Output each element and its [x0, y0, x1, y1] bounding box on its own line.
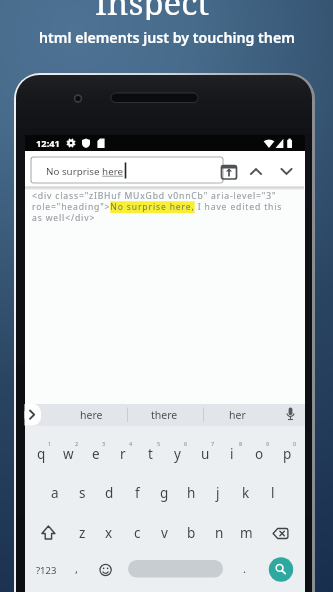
staticText: j: [216, 484, 220, 502]
staticText: k: [242, 484, 250, 502]
button[interactable]: [164, 437, 190, 471]
button[interactable]: [269, 558, 293, 582]
button[interactable]: [110, 437, 136, 471]
staticText: g: [160, 484, 169, 502]
staticText: u: [201, 445, 210, 463]
button[interactable]: [274, 437, 300, 471]
staticText: 12:41: [36, 137, 60, 150]
button[interactable]: [55, 437, 81, 471]
staticText: b: [187, 524, 196, 542]
button[interactable]: [260, 477, 286, 511]
staticText: e: [92, 445, 100, 463]
button[interactable]: [205, 477, 231, 511]
button[interactable]: [233, 477, 259, 511]
staticText: x: [105, 524, 113, 542]
staticText: html elements just by touching them: [39, 28, 295, 47]
button[interactable]: [83, 437, 109, 471]
staticText: i: [230, 445, 234, 463]
staticText: a: [51, 484, 59, 502]
staticText: 4: [129, 440, 133, 447]
staticText: 0: [293, 440, 297, 447]
staticText: n: [215, 524, 224, 542]
button[interactable]: [137, 437, 163, 471]
staticText: y: [174, 445, 181, 463]
staticText: f: [135, 484, 140, 502]
button[interactable]: [69, 477, 95, 511]
staticText: r: [120, 445, 126, 463]
staticText: 7: [211, 440, 215, 447]
button[interactable]: [96, 477, 122, 511]
button[interactable]: [178, 518, 204, 552]
staticText: s: [79, 484, 86, 502]
staticText: 2: [75, 440, 79, 447]
button[interactable]: [96, 518, 122, 552]
staticText: l: [271, 484, 275, 502]
button[interactable]: [28, 437, 54, 471]
button[interactable]: [92, 556, 120, 584]
staticText: here: [80, 408, 103, 422]
staticText: p: [283, 445, 292, 463]
staticText: t: [148, 445, 153, 463]
staticText: <div class="zIBHuf MUxGbd v0nnCb" aria-l…: [32, 190, 277, 202]
button[interactable]: [70, 404, 112, 425]
staticText: as well</div>: [32, 212, 96, 224]
staticText: 9: [266, 440, 270, 447]
staticText: No surprise here: [46, 165, 124, 178]
button[interactable]: [219, 437, 245, 471]
button[interactable]: [216, 404, 258, 425]
button[interactable]: [178, 477, 204, 511]
staticText: 3: [102, 440, 106, 447]
button[interactable]: [233, 518, 259, 552]
staticText: there: [151, 408, 178, 422]
staticText: ?123: [36, 564, 57, 577]
button[interactable]: [25, 151, 305, 187]
staticText: d: [105, 484, 114, 502]
staticText: v: [161, 524, 168, 542]
button[interactable]: [151, 477, 177, 511]
button[interactable]: [206, 518, 232, 552]
button[interactable]: [34, 518, 64, 550]
button[interactable]: [151, 518, 177, 552]
button[interactable]: [42, 477, 68, 511]
staticText: ,: [75, 561, 78, 576]
staticText: 1: [48, 440, 52, 447]
button[interactable]: [124, 477, 150, 511]
staticText: role="heading">No surprise here, I have …: [32, 201, 283, 213]
staticText: 6: [184, 440, 188, 447]
button[interactable]: [28, 556, 64, 584]
staticText: h: [187, 484, 196, 502]
staticText: 5: [157, 440, 161, 447]
button[interactable]: [124, 518, 150, 552]
button[interactable]: [266, 518, 296, 550]
button[interactable]: [69, 518, 95, 552]
staticText: 8: [239, 440, 243, 447]
button[interactable]: [128, 560, 223, 578]
staticText: .: [243, 561, 246, 576]
staticText: o: [255, 445, 264, 463]
staticText: z: [79, 524, 86, 542]
button[interactable]: [192, 437, 218, 471]
staticText: q: [37, 445, 46, 463]
staticText: c: [134, 524, 141, 542]
staticText: Inspect: [95, 0, 210, 20]
staticText: m: [240, 524, 253, 542]
button[interactable]: [246, 437, 272, 471]
button[interactable]: [142, 404, 184, 425]
staticText: her: [229, 408, 246, 422]
staticText: w: [63, 445, 74, 463]
